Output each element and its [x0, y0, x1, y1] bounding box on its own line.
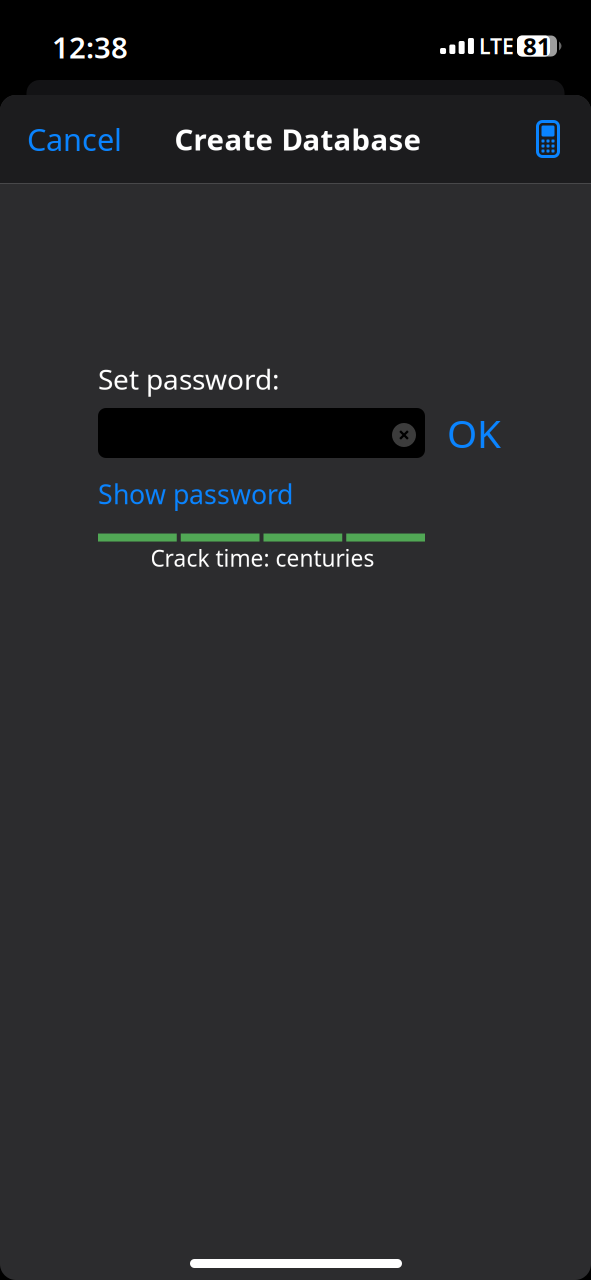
button[interactable]: OK — [434, 408, 514, 458]
button[interactable]: Keypad — [517, 108, 579, 170]
navigationBar: Create Database — [0, 95, 591, 183]
staticText: 81 — [523, 30, 551, 62]
staticText: Set password: — [98, 360, 280, 398]
button[interactable]: Clear text — [383, 410, 425, 460]
button[interactable]: Show password — [98, 475, 294, 513]
button[interactable]: Cancel — [27, 108, 137, 170]
staticText: Create Database — [174, 119, 421, 158]
staticText: Show password — [98, 476, 293, 512]
staticText: LTE — [479, 32, 514, 60]
staticText: Cancel — [27, 119, 122, 159]
staticText: Crack time: centuries — [150, 543, 374, 573]
secureTextField[interactable]: Password — [98, 408, 425, 458]
staticText: 12:38 — [52, 27, 128, 66]
staticText: OK — [447, 407, 501, 459]
